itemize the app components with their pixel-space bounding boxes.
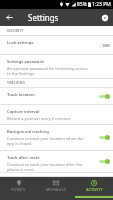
staticText: Settings password (7, 59, 44, 65)
staticText: Record a position every 2 minutes (7, 116, 71, 121)
button[interactable]: Back (0, 9, 18, 26)
staticText: ACTIVITY (86, 187, 103, 192)
staticText: TRACKING (7, 81, 25, 85)
button[interactable]: Settings password (0, 55, 113, 79)
button[interactable]: POINTS (0, 177, 37, 200)
staticText: An optional password for restricting acc… (7, 66, 88, 76)
staticText: 85% (77, 1, 87, 8)
staticText: Settings (28, 12, 59, 23)
staticText: Capture interval (7, 109, 40, 115)
staticText: Track location (7, 92, 35, 98)
button[interactable]: MESSAGES (37, 177, 75, 200)
staticText: MESSAGES (46, 187, 66, 192)
button[interactable]: ACTIVITY (75, 177, 113, 200)
button[interactable]: Accuracy threshold (0, 173, 113, 177)
button[interactable]: Track location (0, 88, 113, 105)
staticText: POINTS (11, 187, 26, 192)
staticText: Track after reset (7, 155, 40, 161)
button[interactable]: Track after reset (0, 151, 113, 173)
staticText: Continue to track your location when the… (7, 136, 88, 146)
button[interactable]: Lock settings (0, 36, 113, 55)
button[interactable]: Background tracking (0, 125, 113, 151)
staticText: Continue to track your location after th… (7, 162, 88, 172)
staticText: 1:23 PM (92, 1, 111, 8)
button[interactable]: Settings options (96, 9, 113, 26)
staticText: SECURITY (7, 29, 24, 33)
staticText: Background tracking (7, 129, 49, 135)
button[interactable]: Capture interval (0, 105, 113, 125)
staticText: Lock settings (7, 40, 34, 46)
